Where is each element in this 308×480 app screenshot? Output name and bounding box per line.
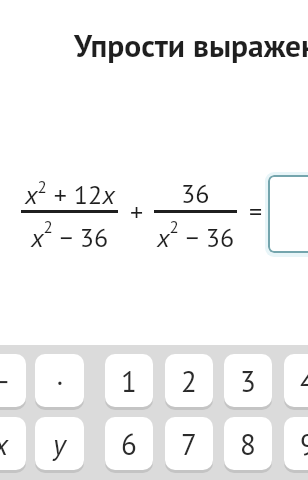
button[interactable]: 9 <box>284 417 308 470</box>
button[interactable]: 8 <box>224 417 272 470</box>
staticText: 9 <box>300 425 308 463</box>
button[interactable]: 3 <box>224 354 272 407</box>
staticText: 3 <box>240 362 256 400</box>
staticText: x2 − 36 <box>157 216 235 254</box>
button[interactable]: · <box>35 354 84 407</box>
staticText: 1 <box>121 362 137 400</box>
staticText: 8 <box>240 425 256 463</box>
button[interactable]: − <box>0 354 26 407</box>
button[interactable]: 2 <box>165 354 213 407</box>
button[interactable]: 7 <box>165 417 213 470</box>
staticText: x <box>0 425 9 463</box>
staticText: 7 <box>181 425 197 463</box>
button[interactable] <box>268 175 308 253</box>
staticText: 6 <box>121 425 137 463</box>
staticText: 4 <box>300 362 308 400</box>
button[interactable]: x <box>0 417 26 470</box>
staticText: 2 <box>181 362 197 400</box>
staticText: − <box>0 362 9 400</box>
button[interactable]: y <box>35 417 84 470</box>
button[interactable]: 1 <box>105 354 153 407</box>
staticText: + <box>130 195 144 229</box>
button[interactable]: 4 <box>284 354 308 407</box>
staticText: = <box>249 195 263 229</box>
staticText: · <box>56 362 64 400</box>
staticText: x2 + 12x <box>25 176 115 211</box>
staticText: y <box>53 425 66 463</box>
staticText: Упрости выражение <box>74 25 308 66</box>
staticText: x2 − 36 <box>31 216 109 254</box>
button[interactable]: 6 <box>105 417 153 470</box>
staticText: 36 <box>181 177 210 211</box>
